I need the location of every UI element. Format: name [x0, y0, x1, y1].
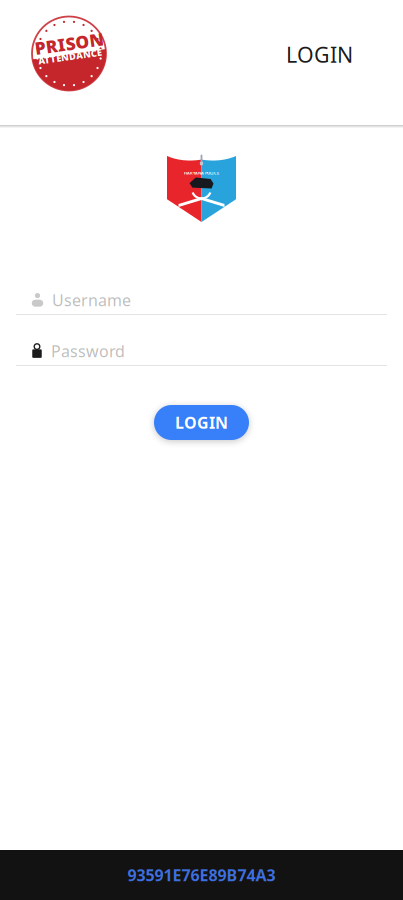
staticText: 93591E76E89B74A3 [127, 864, 275, 886]
staticText: PRISON [34, 32, 103, 55]
staticText: Username [52, 289, 131, 311]
staticText: LOGIN [286, 40, 353, 69]
staticText: HARYANA POLICE [184, 170, 219, 176]
button[interactable]: LOGIN [154, 405, 249, 440]
staticText: Password [51, 340, 125, 362]
staticText: LOGIN [175, 412, 228, 433]
staticText: ATTENDANCE [38, 50, 102, 63]
